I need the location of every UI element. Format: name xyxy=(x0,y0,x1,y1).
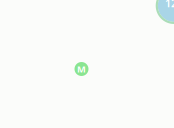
button[interactable]: Unread count xyxy=(155,0,174,25)
staticText: M xyxy=(77,63,86,75)
staticText: 123 xyxy=(165,0,174,10)
button[interactable]: Profile xyxy=(74,62,88,76)
